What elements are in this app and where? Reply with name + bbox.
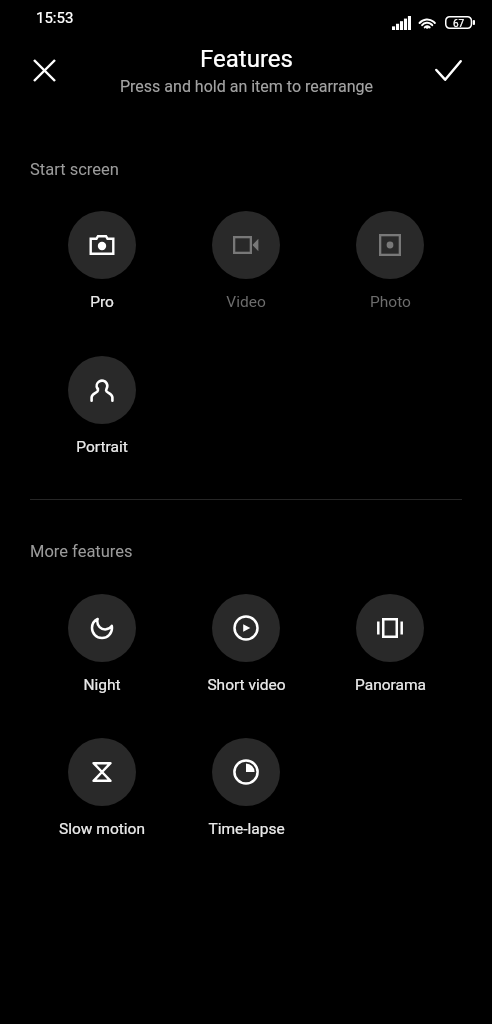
button[interactable]: Short video [174, 594, 318, 694]
button[interactable]: Video [174, 211, 318, 311]
button[interactable]: Confirm [424, 46, 472, 94]
staticText: Features [200, 45, 293, 73]
staticText: More features [30, 542, 133, 561]
staticText: Video [226, 293, 266, 311]
staticText: Slow motion [59, 820, 145, 838]
staticText: 15:53 [36, 9, 74, 27]
button[interactable]: Close [20, 46, 68, 94]
button[interactable]: Photo [318, 211, 462, 311]
staticText: Panorama [355, 676, 426, 694]
button[interactable]: Pro [30, 211, 174, 311]
staticText: Time-lapse [208, 820, 285, 838]
button[interactable]: Panorama [318, 594, 462, 694]
button[interactable]: Night [30, 594, 174, 694]
staticText: Start screen [30, 160, 119, 179]
button[interactable]: Portrait [30, 356, 174, 456]
staticText: Short video [207, 676, 286, 694]
staticText: Press and hold an item to rearrange [120, 77, 373, 96]
button[interactable]: Slow motion [30, 738, 174, 838]
staticText: 67 [453, 18, 465, 30]
staticText: Photo [370, 293, 411, 311]
staticText: Night [83, 676, 121, 694]
staticText: Portrait [76, 438, 128, 456]
button[interactable]: Time-lapse [174, 738, 318, 838]
staticText: Pro [90, 293, 114, 311]
